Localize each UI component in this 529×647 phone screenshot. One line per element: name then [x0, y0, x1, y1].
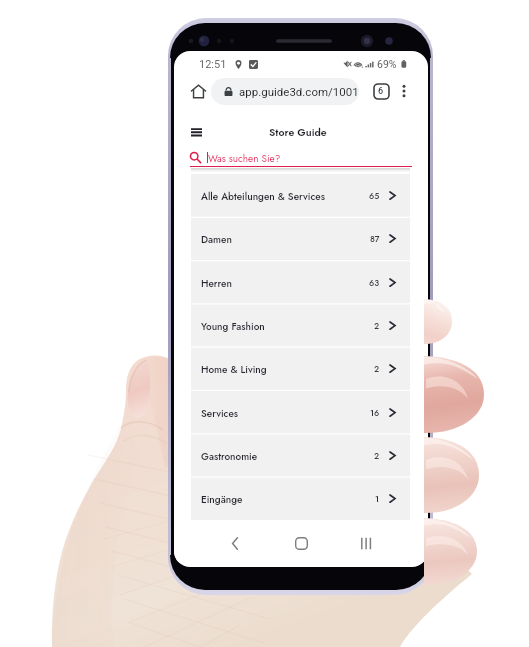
- button[interactable]: Young Fashion: [191, 304, 410, 347]
- button[interactable]: Eingänge: [191, 477, 410, 520]
- staticText: 12:51: [199, 58, 227, 71]
- button[interactable]: Gastronomie: [191, 434, 410, 477]
- staticText: Alle Abteilungen & Services: [201, 189, 325, 203]
- staticText: 6: [378, 86, 384, 97]
- staticText: Services: [201, 406, 239, 420]
- button[interactable]: Herren: [191, 261, 410, 304]
- staticText: 16: [370, 407, 380, 419]
- staticText: 65: [369, 190, 380, 202]
- staticText: 69%: [377, 58, 397, 70]
- staticText: Young Fashion: [201, 319, 265, 333]
- staticText: Home & Living: [201, 362, 267, 376]
- staticText: Store Guide: [269, 125, 327, 140]
- button[interactable]: Alle Abteilungen & Services: [191, 174, 410, 217]
- staticText: 2: [374, 450, 380, 462]
- staticText: 63: [369, 277, 380, 289]
- staticText: 87: [370, 233, 380, 245]
- staticText: Gastronomie: [201, 449, 258, 463]
- button[interactable]: Home & Living: [191, 347, 410, 390]
- button[interactable]: Home: [288, 530, 314, 556]
- button[interactable]: Open tabs: [369, 79, 393, 103]
- button[interactable]: Open navigation menu: [185, 122, 207, 144]
- button[interactable]: Home page: [186, 79, 210, 103]
- staticText: Damen: [201, 232, 232, 246]
- staticText: 1: [375, 493, 380, 505]
- staticText: Herren: [201, 276, 232, 290]
- button[interactable]: More options: [392, 79, 416, 103]
- staticText: 2: [374, 320, 380, 332]
- staticText: 2: [374, 363, 380, 375]
- button[interactable]: app.guide3d.com/1001: [211, 78, 359, 105]
- staticText: Eingänge: [201, 492, 243, 506]
- button[interactable]: Services: [191, 391, 410, 434]
- button[interactable]: Damen: [191, 217, 410, 260]
- staticText: Was suchen Sie?: [208, 151, 281, 165]
- button[interactable]: Recent apps: [353, 530, 379, 556]
- button[interactable]: Back: [222, 530, 248, 556]
- staticText: app.guide3d.com/1001: [239, 85, 359, 98]
